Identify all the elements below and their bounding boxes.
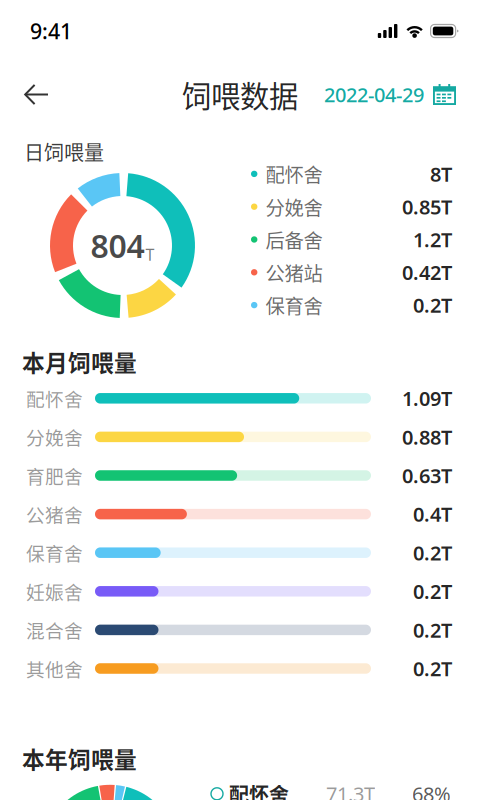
staticText: 71.3T (326, 780, 375, 800)
staticText: 0.63T (402, 462, 452, 489)
staticText: 本月饲喂量 (22, 345, 137, 378)
staticText: 公猪舍 (26, 501, 83, 528)
staticText: 公猪站 (265, 258, 322, 286)
staticText: 0.85T (402, 193, 452, 220)
staticText: 分娩舍 (26, 423, 83, 450)
staticText: 本年饲喂量 (22, 742, 137, 775)
staticText: 分娩舍 (265, 193, 322, 221)
staticText: 9:41 (30, 17, 72, 45)
staticText: 育肥舍 (26, 462, 83, 489)
staticText: 日饲喂量 (24, 137, 104, 166)
staticText: 配怀舍 (229, 779, 289, 800)
staticText: 1.09T (402, 385, 452, 412)
staticText: 0.88T (402, 424, 452, 450)
staticText: 2022-04-29 (324, 81, 424, 108)
staticText: 0.4T (413, 501, 452, 527)
staticText: 0.2T (413, 578, 452, 605)
staticText: 配怀舍 (265, 160, 322, 188)
staticText: 0.2T (413, 655, 452, 682)
staticText: 0.2T (413, 617, 452, 643)
staticText: 保育舍 (265, 291, 322, 319)
staticText: 0.2T (413, 539, 452, 566)
staticText: 其他舍 (26, 655, 83, 682)
staticText: 妊娠舍 (26, 578, 83, 605)
staticText: 0.42T (402, 259, 452, 286)
staticText: 804 (90, 224, 144, 267)
staticText: 1.2T (413, 226, 452, 253)
button[interactable]: Back (0, 73, 63, 115)
staticText: 保育舍 (26, 539, 83, 566)
staticText: 配怀舍 (26, 385, 83, 412)
staticText: 饲喂数据 (182, 73, 298, 116)
staticText: 后备舍 (265, 225, 322, 253)
staticText: T (145, 244, 154, 265)
staticText: 68% (412, 780, 451, 800)
button[interactable]: 2022-04-29 (324, 71, 480, 118)
staticText: 8T (430, 161, 452, 187)
staticText: 混合舍 (26, 616, 83, 643)
staticText: 0.2T (413, 292, 452, 318)
